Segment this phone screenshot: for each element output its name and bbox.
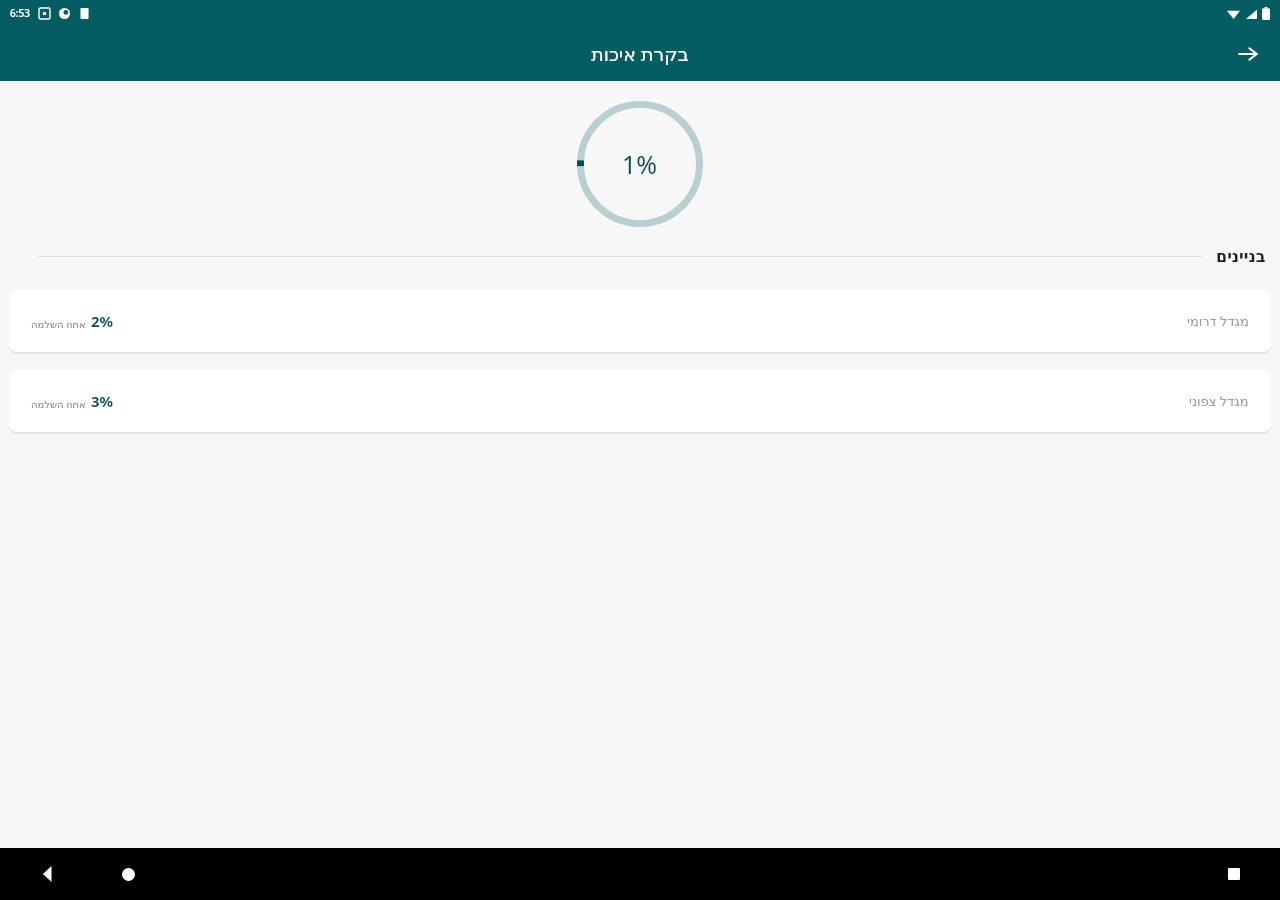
staticText: מגדל דרומי <box>1187 312 1249 330</box>
staticText: 2% <box>91 311 114 331</box>
staticText: 6:53 <box>10 6 30 20</box>
button[interactable]: אחוז השלמה <box>9 290 1271 352</box>
button[interactable]: Back <box>30 856 66 892</box>
staticText: בקרת איכות <box>591 41 689 67</box>
button[interactable]: Back <box>1226 32 1270 76</box>
button[interactable]: Recent apps <box>1216 856 1252 892</box>
staticText: אחוז השלמה <box>31 317 86 331</box>
button[interactable]: Home <box>110 856 146 892</box>
staticText: 1% <box>622 147 658 181</box>
staticText: מגדל צפוני <box>1189 392 1249 410</box>
staticText: 3% <box>91 391 114 411</box>
staticText: אחוז השלמה <box>31 397 86 411</box>
button[interactable]: אחוז השלמה <box>9 370 1271 432</box>
staticText: בניינים <box>1216 247 1266 266</box>
